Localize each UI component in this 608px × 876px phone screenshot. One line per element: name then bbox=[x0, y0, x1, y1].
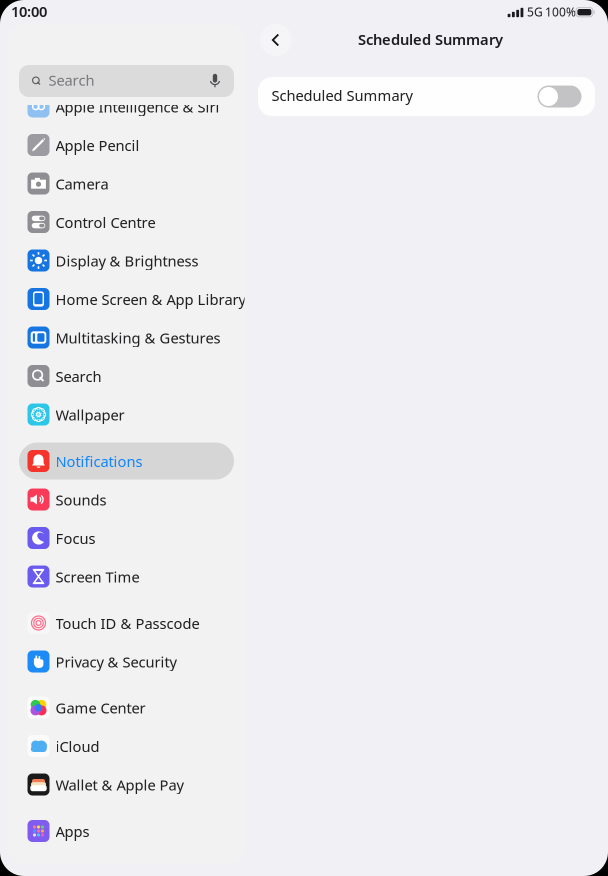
staticText: Wallpaper bbox=[55, 405, 124, 424]
staticText: Sounds bbox=[55, 490, 106, 509]
staticText: iCloud bbox=[55, 736, 99, 756]
button[interactable]: Search bbox=[19, 65, 234, 97]
staticText: Control Centre bbox=[55, 212, 155, 232]
staticText: 5G bbox=[527, 4, 543, 20]
button[interactable]: Privacy & Security bbox=[19, 643, 234, 680]
staticText: 100% bbox=[545, 4, 576, 20]
staticText: Privacy & Security bbox=[55, 652, 176, 671]
staticText: Screen Time bbox=[55, 567, 139, 586]
button[interactable]: Home Screen & App Library bbox=[19, 280, 234, 317]
staticText: Apps bbox=[55, 821, 89, 841]
button[interactable]: Screen Time bbox=[19, 558, 234, 595]
button[interactable]: Apps bbox=[19, 812, 234, 849]
button[interactable]: Control Centre bbox=[19, 203, 234, 240]
staticText: Wallet & Apple Pay bbox=[55, 775, 183, 794]
staticText: Touch ID & Passcode bbox=[55, 613, 199, 633]
button[interactable]: Apple Pencil bbox=[19, 126, 234, 163]
button[interactable]: Focus bbox=[19, 519, 234, 556]
staticText: Home Screen & App Library bbox=[55, 289, 245, 309]
staticText: Apple Intelligence & Siri bbox=[55, 97, 219, 116]
staticText: Focus bbox=[55, 528, 95, 548]
button[interactable]: Scheduled Summary bbox=[258, 77, 595, 116]
staticText: Scheduled Summary bbox=[272, 86, 413, 105]
button[interactable]: Touch ID & Passcode bbox=[19, 604, 234, 641]
button[interactable]: Game Center bbox=[19, 689, 234, 726]
staticText: Display & Brightness bbox=[55, 251, 198, 270]
staticText: Game Center bbox=[55, 698, 145, 717]
button[interactable]: Wallpaper bbox=[19, 396, 234, 433]
button[interactable]: Display & Brightness bbox=[19, 242, 234, 279]
button[interactable]: Multitasking & Gestures bbox=[19, 319, 234, 356]
button[interactable]: Camera bbox=[19, 165, 234, 202]
staticText: Search bbox=[55, 366, 101, 386]
staticText: Apple Pencil bbox=[55, 135, 139, 155]
staticText: Notifications bbox=[55, 451, 142, 471]
button[interactable]: Notifications bbox=[19, 442, 234, 479]
button[interactable]: Sounds bbox=[19, 481, 234, 518]
staticText: Camera bbox=[55, 174, 108, 193]
button[interactable]: Apple Intelligence & Siri bbox=[19, 88, 234, 125]
staticText: Multitasking & Gestures bbox=[55, 328, 220, 347]
staticText: Scheduled Summary bbox=[358, 29, 503, 49]
staticText: Search bbox=[48, 70, 94, 90]
button[interactable]: Back bbox=[260, 24, 292, 56]
staticText: 10:00 bbox=[11, 2, 47, 21]
button[interactable]: iCloud bbox=[19, 727, 234, 764]
button[interactable]: Search bbox=[19, 357, 234, 394]
button[interactable]: Wallet & Apple Pay bbox=[19, 766, 234, 803]
